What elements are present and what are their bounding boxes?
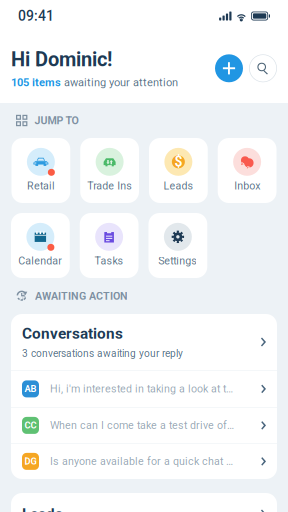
staticText: AWAITING ACTION bbox=[35, 290, 128, 302]
button[interactable]: $ bbox=[149, 138, 208, 203]
staticText: 3 conversations awaiting your reply bbox=[22, 347, 183, 359]
button[interactable]: Conversations bbox=[11, 314, 277, 370]
staticText: Calendar bbox=[18, 255, 62, 267]
staticText: Is anyone available for a quick chat on… bbox=[50, 455, 235, 468]
staticText: AB bbox=[24, 383, 36, 394]
button[interactable]: Inbox bbox=[218, 138, 277, 203]
button[interactable]: Add bbox=[215, 54, 243, 82]
button[interactable]: Leads bbox=[11, 493, 277, 512]
staticText: Leads bbox=[22, 505, 63, 512]
staticText: CC bbox=[24, 420, 36, 431]
staticText: DG bbox=[24, 456, 36, 467]
staticText: Tasks bbox=[95, 255, 124, 267]
button[interactable]: AB bbox=[11, 370, 277, 407]
staticText: Leads bbox=[163, 180, 193, 192]
staticText: $ bbox=[174, 154, 182, 170]
staticText: Hi Dominic! bbox=[11, 48, 112, 71]
button[interactable]: Tasks bbox=[80, 213, 138, 278]
staticText: Conversations bbox=[22, 325, 123, 343]
staticText: awaiting your attention bbox=[61, 76, 178, 89]
staticText: Hi, i'm interested in taking a look at t… bbox=[50, 383, 235, 395]
button[interactable]: Settings bbox=[148, 213, 207, 278]
button[interactable]: DG bbox=[11, 443, 277, 479]
button[interactable]: CC bbox=[11, 407, 277, 443]
staticText: JUMP TO bbox=[34, 114, 78, 127]
button[interactable]: Search bbox=[249, 54, 277, 82]
staticText: Trade Ins bbox=[87, 180, 132, 192]
staticText: Inbox bbox=[234, 180, 260, 192]
staticText: When can I come take a test drive of … bbox=[50, 419, 235, 432]
button[interactable]: Trade Ins bbox=[80, 138, 139, 203]
staticText: Settings bbox=[158, 255, 197, 267]
staticText: 105 items bbox=[11, 76, 61, 89]
button[interactable]: Calendar bbox=[11, 213, 70, 278]
staticText: Retail bbox=[27, 180, 55, 192]
staticText: 09:41 bbox=[18, 8, 54, 24]
button[interactable]: Retail bbox=[11, 138, 70, 203]
